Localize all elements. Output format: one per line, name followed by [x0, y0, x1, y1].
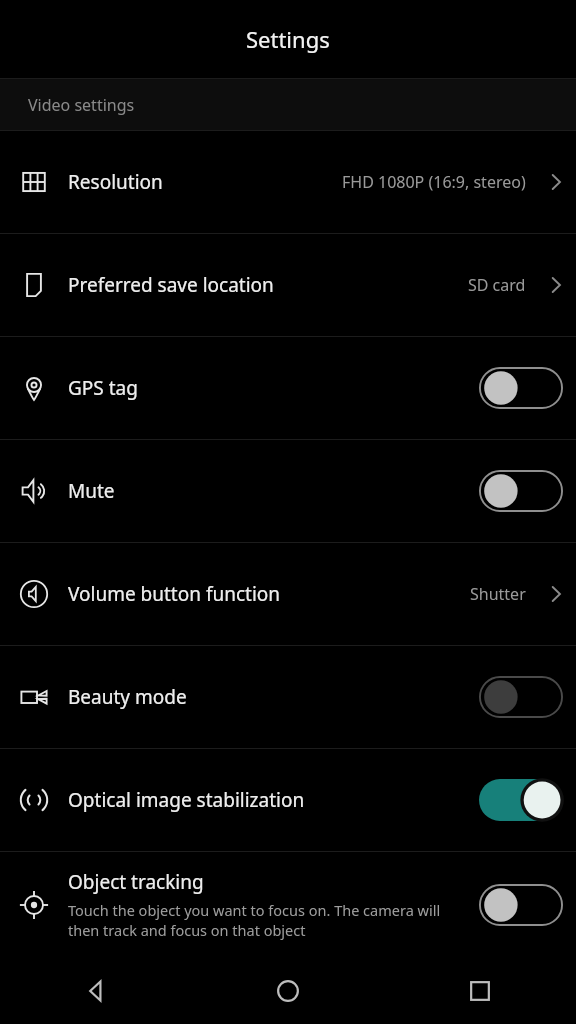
button[interactable]: Volume button function: [0, 543, 576, 645]
staticText: Mute: [68, 478, 115, 504]
button[interactable]: Object tracking: [0, 852, 576, 957]
staticText: Volume button function: [68, 581, 281, 607]
button[interactable]: Mute: [0, 440, 576, 542]
staticText: Touch the object you want to focus on. T…: [68, 900, 441, 940]
staticText: Optical image stabilization: [68, 787, 305, 813]
button[interactable]: Resolution: [0, 131, 576, 233]
staticText: Video settings: [28, 94, 135, 116]
button[interactable]: Beauty mode: [0, 646, 576, 748]
button[interactable]: Beauty mode toggle: [466, 646, 576, 748]
staticText: Beauty mode: [68, 684, 187, 710]
staticText: SD card: [468, 274, 526, 296]
staticText: Object tracking: [68, 869, 204, 895]
staticText: Preferred save location: [68, 272, 274, 298]
button[interactable]: Optical image stabilization: [0, 749, 576, 851]
staticText: FHD 1080P (16:9, stereo): [342, 171, 526, 193]
button[interactable]: Back: [0, 957, 192, 1024]
staticText: Resolution: [68, 169, 163, 195]
button[interactable]: Home: [192, 957, 384, 1024]
button[interactable]: Mute toggle: [466, 440, 576, 542]
button[interactable]: Recent apps: [384, 957, 576, 1024]
staticText: GPS tag: [68, 375, 138, 401]
staticText: Settings: [246, 24, 330, 54]
button[interactable]: GPS tag: [0, 337, 576, 439]
button[interactable]: Optical image stabilization toggle: [466, 749, 576, 851]
button[interactable]: GPS tag toggle: [466, 337, 576, 439]
button[interactable]: Object tracking toggle: [466, 852, 576, 957]
button[interactable]: Preferred save location: [0, 234, 576, 336]
staticText: Shutter: [470, 583, 526, 605]
